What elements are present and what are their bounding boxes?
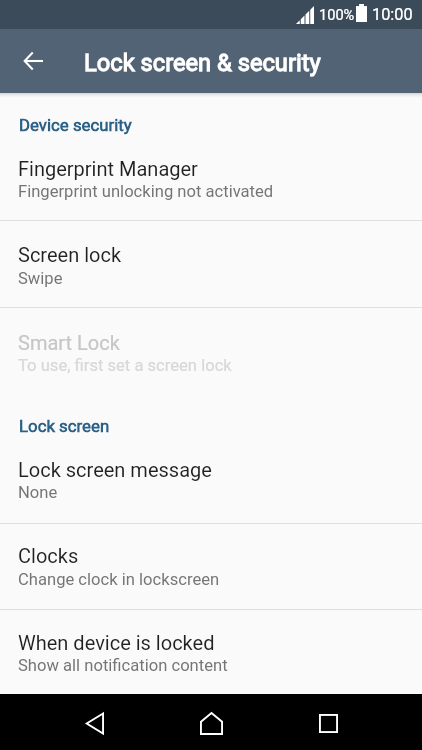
button[interactable] bbox=[0, 141, 422, 220]
staticText: Change clock in lockscreen bbox=[18, 570, 220, 589]
button[interactable] bbox=[0, 610, 422, 694]
staticText: Clocks bbox=[18, 544, 79, 567]
button[interactable]: Recent apps bbox=[304, 696, 352, 750]
staticText: Device security bbox=[19, 115, 132, 135]
staticText: 10:00 bbox=[372, 5, 413, 24]
staticText: Lock screen bbox=[19, 416, 110, 436]
staticText: None bbox=[18, 483, 58, 502]
staticText: To use, first set a screen lock bbox=[18, 356, 232, 375]
button[interactable]: Back bbox=[70, 696, 118, 750]
staticText: Fingerprint unlocking not activated bbox=[18, 182, 274, 201]
button[interactable] bbox=[0, 308, 422, 394]
button[interactable] bbox=[0, 524, 422, 609]
button[interactable] bbox=[0, 221, 422, 307]
staticText: When device is locked bbox=[18, 631, 215, 654]
staticText: Fingerprint Manager bbox=[18, 157, 198, 180]
staticText: Screen lock bbox=[18, 243, 122, 266]
staticText: Show all notification content bbox=[18, 656, 228, 675]
staticText: 100% bbox=[319, 6, 355, 23]
button bbox=[0, 102, 422, 142]
staticText: Lock screen message bbox=[18, 458, 212, 481]
button[interactable]: Home bbox=[187, 696, 235, 750]
button[interactable]: Navigate up bbox=[14, 29, 52, 92]
button bbox=[0, 403, 422, 443]
staticText: Swipe bbox=[18, 269, 63, 288]
staticText: Lock screen & security bbox=[84, 49, 321, 77]
staticText: Smart Lock bbox=[18, 331, 120, 354]
button[interactable] bbox=[0, 442, 422, 523]
